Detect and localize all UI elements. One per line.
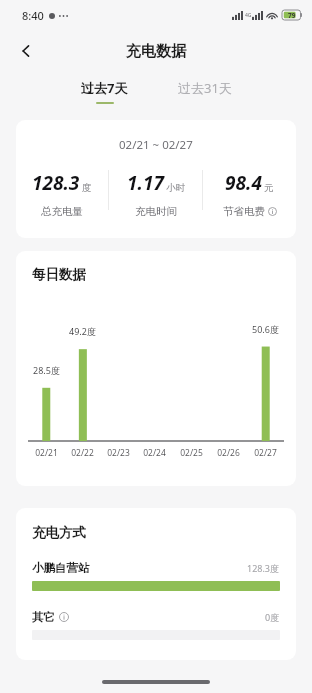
staticText: 02/21 ~ 02/27	[119, 137, 193, 153]
staticText: 其它	[32, 610, 55, 624]
staticText: 充电时间	[135, 205, 177, 218]
staticText: 总充电量	[41, 205, 83, 218]
staticText: 充电数据	[126, 42, 186, 61]
staticText: 4G	[245, 12, 252, 19]
staticText: 128.3度	[247, 562, 280, 574]
staticText: 02/27	[254, 447, 277, 459]
staticText: 过去7天	[81, 79, 128, 97]
staticText: 49.2度	[69, 325, 96, 337]
staticText: 02/21	[35, 447, 58, 459]
staticText: 1.17	[127, 170, 164, 196]
staticText: 小时	[166, 182, 185, 194]
button[interactable]: 过去7天	[75, 77, 134, 106]
staticText: 50.6度	[252, 323, 279, 335]
staticText: 28.5度	[33, 364, 60, 376]
staticText: 128.3	[32, 170, 80, 196]
staticText: 98.4	[225, 170, 262, 196]
button[interactable]: 过去31天	[172, 77, 238, 106]
button[interactable]: 其它	[32, 610, 280, 640]
staticText: 过去31天	[178, 79, 232, 97]
staticText: 节省电费	[223, 205, 265, 218]
staticText: 每日数据	[32, 266, 86, 283]
staticText: 0度	[265, 611, 280, 623]
staticText: 8:40	[22, 8, 44, 23]
staticText: 79	[288, 11, 296, 20]
staticText: 度	[82, 182, 92, 194]
staticText: 02/26	[217, 447, 240, 459]
staticText: 02/24	[143, 447, 166, 459]
staticText: 02/25	[180, 447, 203, 459]
button[interactable]: Back	[8, 33, 44, 69]
staticText: 充电方式	[32, 524, 86, 541]
staticText: 02/23	[107, 447, 130, 459]
button[interactable]: 小鹏自营站	[32, 561, 280, 591]
staticText: 元	[264, 182, 274, 194]
staticText: 02/22	[71, 447, 94, 459]
staticText: 小鹏自营站	[32, 561, 90, 575]
